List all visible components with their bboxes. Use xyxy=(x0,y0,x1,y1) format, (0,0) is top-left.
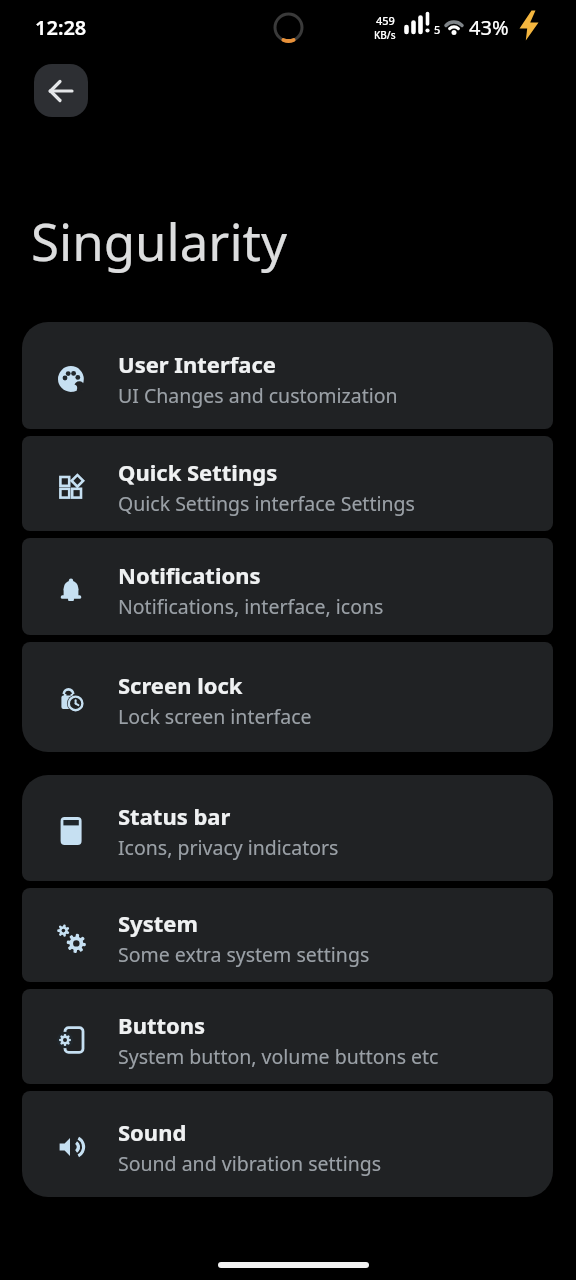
staticText: UI Changes and customization xyxy=(118,382,398,409)
staticText: Status bar xyxy=(118,801,231,831)
button[interactable] xyxy=(34,64,88,117)
staticText: Buttons xyxy=(118,1010,206,1040)
staticText: System button, volume buttons etc xyxy=(118,1043,439,1070)
staticText: System xyxy=(118,908,198,938)
staticText: Icons, privacy indicators xyxy=(118,834,339,861)
staticText: Singularity xyxy=(31,206,287,275)
staticText: Sound xyxy=(118,1117,187,1147)
staticText: Quick Settings interface Settings xyxy=(118,490,415,517)
button[interactable]: User Interface xyxy=(22,322,553,429)
button[interactable]: System xyxy=(22,888,553,982)
staticText: Some extra system settings xyxy=(118,941,370,968)
staticText: 459 xyxy=(376,13,395,28)
button[interactable]: Sound xyxy=(22,1091,553,1197)
staticText: 12:28 xyxy=(35,14,87,41)
button[interactable]: Quick Settings xyxy=(22,436,553,531)
staticText: Notifications xyxy=(118,560,261,590)
staticText: Lock screen interface xyxy=(118,703,312,730)
staticText: Notifications, interface, icons xyxy=(118,593,384,620)
staticText: 5 xyxy=(434,22,441,37)
staticText: User Interface xyxy=(118,349,276,379)
staticText: 43% xyxy=(469,14,509,41)
button[interactable]: Screen lock xyxy=(22,642,553,752)
button[interactable]: Buttons xyxy=(22,989,553,1084)
staticText: Screen lock xyxy=(118,670,243,700)
staticText: Sound and vibration settings xyxy=(118,1150,382,1177)
button[interactable]: Status bar xyxy=(22,775,553,881)
staticText: KB/s xyxy=(374,28,396,42)
staticText: Quick Settings xyxy=(118,457,278,487)
button[interactable]: Notifications xyxy=(22,538,553,635)
